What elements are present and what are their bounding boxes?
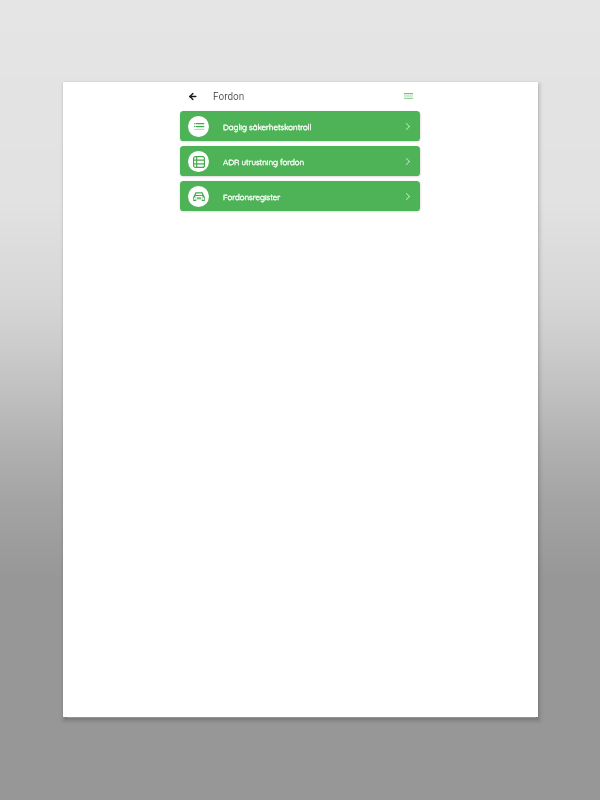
staticText: Fordonsregister bbox=[223, 192, 281, 202]
button[interactable]: ADR utrustning fordon bbox=[180, 146, 420, 176]
staticText: Fordon bbox=[213, 91, 245, 103]
button[interactable]: Daglig säkerhetskontroll bbox=[180, 111, 420, 141]
staticText: ADR utrustning fordon bbox=[223, 157, 305, 167]
button[interactable]: Fordonsregister bbox=[180, 181, 420, 211]
staticText: Daglig säkerhetskontroll bbox=[223, 122, 312, 132]
button[interactable]: Back bbox=[178, 86, 206, 106]
button[interactable]: Menu bbox=[397, 86, 419, 106]
